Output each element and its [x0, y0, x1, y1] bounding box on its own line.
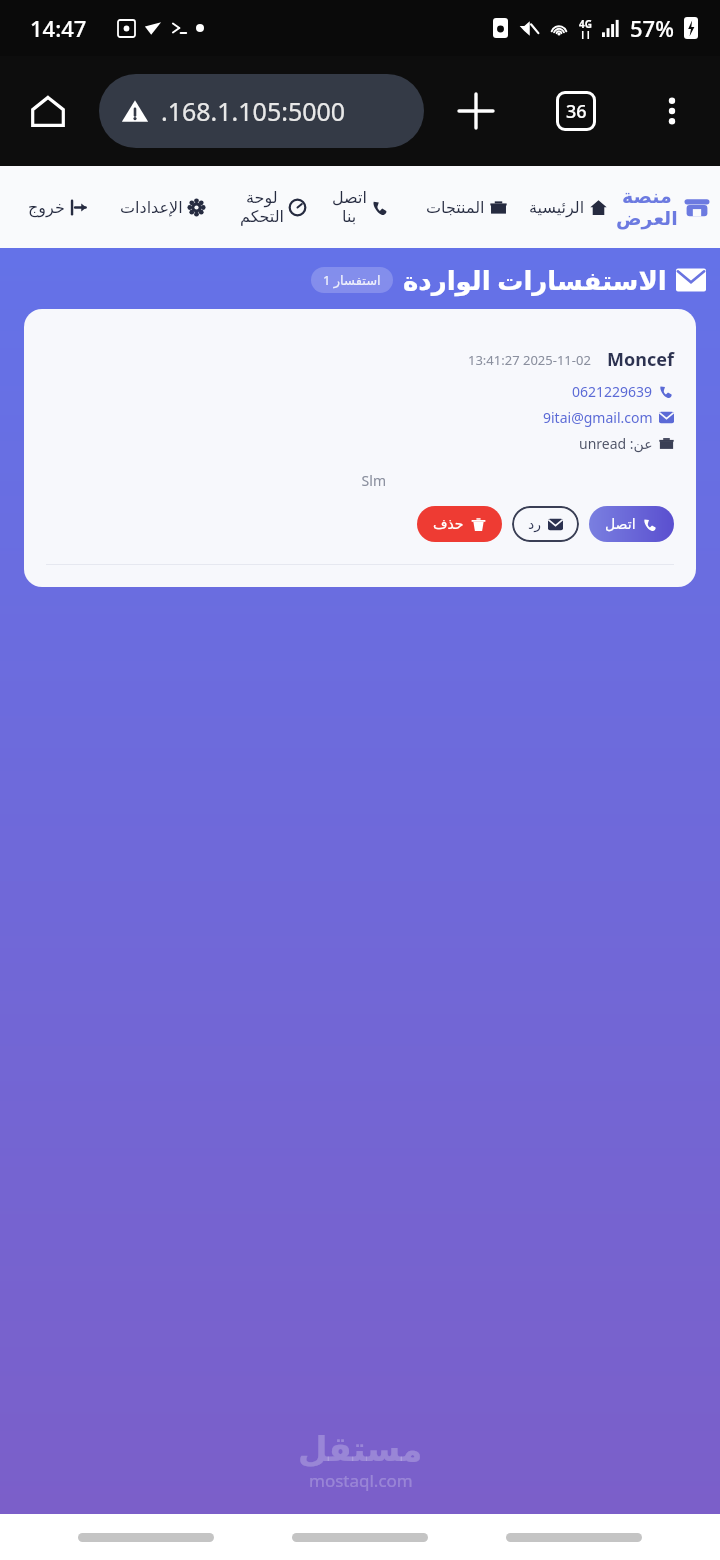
- staticText: Moncef: [607, 347, 674, 372]
- button[interactable]: الرئيسية: [527, 192, 609, 223]
- button[interactable]: More options: [646, 85, 698, 137]
- staticText: منصة: [622, 185, 672, 207]
- button[interactable]: 13:41:27 2025-11-02: [24, 309, 696, 587]
- staticText: المنتجات: [426, 198, 485, 217]
- staticText: اتصل: [605, 516, 636, 532]
- button[interactable]: Home: [22, 85, 74, 137]
- button[interactable]: لوحة: [238, 184, 308, 230]
- button[interactable]: المنتجات: [424, 192, 509, 223]
- staticText: العرض: [616, 207, 678, 229]
- button[interactable]: الإعدادات: [118, 192, 207, 223]
- staticText: الاستفسارات الواردة: [403, 262, 667, 297]
- staticText: .168.1.105:5000: [161, 94, 346, 128]
- button[interactable]: .168.1.105:5000: [99, 74, 424, 148]
- staticText: 1 استفسار: [323, 271, 381, 289]
- staticText: 57%: [630, 13, 674, 43]
- staticText: رد: [528, 516, 541, 532]
- staticText: التحكم: [240, 207, 284, 226]
- staticText: Slm: [24, 471, 386, 490]
- staticText: 36: [566, 99, 587, 124]
- button[interactable]: اتصل: [330, 184, 391, 230]
- staticText: 4G: [579, 17, 592, 31]
- staticText: مستقل: [298, 1429, 423, 1469]
- staticText: الإعدادات: [120, 198, 183, 217]
- staticText: حذف: [433, 516, 464, 532]
- button[interactable]: New tab: [448, 83, 504, 139]
- staticText: الرئيسية: [529, 198, 585, 217]
- button[interactable]: رد: [512, 506, 579, 542]
- button[interactable]: خروج: [26, 192, 89, 223]
- button[interactable]: حذف: [417, 506, 502, 542]
- staticText: لوحة: [246, 188, 278, 207]
- staticText: بنا: [342, 207, 357, 226]
- staticText: 13:41:27 2025-11-02: [468, 351, 591, 369]
- staticText: unread :عن: [579, 434, 653, 453]
- button[interactable]: اتصل: [589, 506, 674, 542]
- staticText: 9itai@gmail.com: [543, 408, 653, 427]
- button[interactable]: Tabs: 36 open: [548, 83, 604, 139]
- staticText: خروج: [28, 198, 65, 217]
- staticText: اتصل: [332, 188, 367, 207]
- staticText: 0621229639: [572, 382, 653, 401]
- button[interactable]: منصة: [616, 185, 710, 229]
- staticText: 14:47: [30, 13, 87, 43]
- staticText: mostaql.com: [309, 1469, 413, 1492]
